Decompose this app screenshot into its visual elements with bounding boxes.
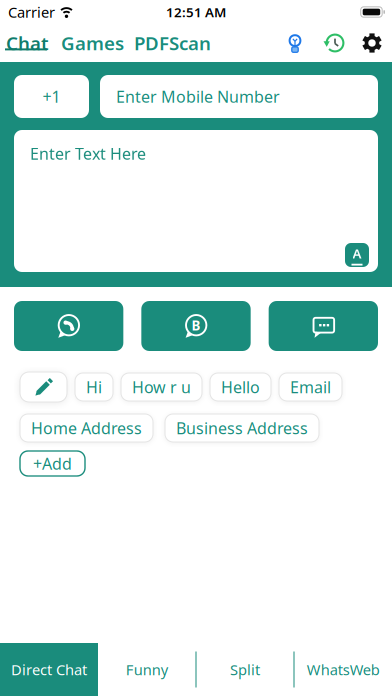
- staticText: Business Address: [176, 417, 308, 439]
- button[interactable]: Settings: [348, 32, 383, 54]
- button[interactable]: Direct Chat: [0, 643, 98, 696]
- button[interactable]: Games: [49, 31, 124, 55]
- staticText: Funny: [126, 660, 168, 679]
- button[interactable]: Email: [279, 373, 342, 401]
- staticText: Home Address: [31, 417, 142, 439]
- button[interactable]: PDFScan: [124, 31, 211, 55]
- staticText: +Add: [33, 453, 72, 474]
- staticText: +1: [42, 86, 60, 107]
- button[interactable]: Split: [196, 643, 293, 696]
- staticText: Direct Chat: [11, 660, 87, 679]
- button[interactable]: Open in WhatsApp Business: [141, 301, 251, 351]
- button[interactable]: +1: [14, 75, 89, 118]
- button[interactable]: WhatsWeb: [294, 643, 392, 696]
- staticText: 12:51 AM: [166, 3, 226, 21]
- button[interactable]: Chat: [6, 31, 49, 55]
- staticText: Split: [230, 660, 260, 679]
- button[interactable]: Business Address: [165, 414, 319, 442]
- staticText: Carrier: [8, 2, 55, 22]
- staticText: A: [352, 244, 361, 262]
- button[interactable]: History: [307, 31, 348, 55]
- button[interactable]: How r u: [121, 373, 202, 401]
- staticText: Enter Text Here: [30, 143, 146, 164]
- button[interactable]: Open in WhatsApp: [14, 301, 123, 351]
- staticText: Enter Mobile Number: [116, 86, 280, 107]
- button[interactable]: Send SMS: [269, 301, 378, 351]
- staticText: B: [191, 316, 200, 334]
- button[interactable]: Funny: [98, 643, 195, 696]
- button[interactable]: Tips: [283, 31, 307, 55]
- button[interactable]: +Add: [20, 451, 85, 476]
- button[interactable]: Enter Text Here: [14, 130, 378, 272]
- staticText: WhatsWeb: [307, 660, 380, 679]
- button[interactable]: Hi: [75, 373, 113, 401]
- staticText: Hello: [221, 376, 260, 398]
- button[interactable]: Text style: [345, 243, 369, 267]
- staticText: Chat: [6, 31, 49, 55]
- staticText: PDFScan: [134, 31, 211, 55]
- staticText: Email: [290, 376, 331, 398]
- button[interactable]: Enter Mobile Number: [100, 75, 378, 118]
- button[interactable]: Hello: [210, 373, 271, 401]
- button[interactable]: Home Address: [20, 414, 153, 442]
- staticText: How r u: [132, 376, 191, 398]
- staticText: Games: [61, 31, 124, 55]
- staticText: Hi: [86, 376, 102, 398]
- button[interactable]: Edit quick texts: [20, 372, 67, 402]
